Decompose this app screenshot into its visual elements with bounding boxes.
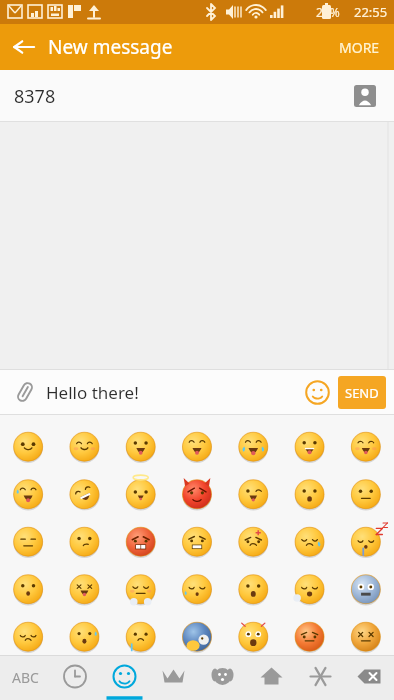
button[interactable]: Emoji 2	[57, 415, 114, 462]
button[interactable]: Emoji 34	[282, 603, 338, 650]
button[interactable]: Emoji 24	[114, 556, 170, 603]
button[interactable]: Emoji 22	[0, 556, 57, 603]
button[interactable]: Emoji 23	[57, 556, 114, 603]
button[interactable]: MORE	[325, 24, 394, 70]
button[interactable]: Emoji 4	[170, 415, 226, 462]
button[interactable]: Emoji 27	[282, 556, 338, 603]
button[interactable]: Emoji 14	[338, 462, 394, 509]
button[interactable]: Crown	[149, 655, 198, 700]
button[interactable]: Emoji 12	[226, 462, 282, 509]
button[interactable]: Emoji 18	[170, 509, 226, 556]
button[interactable]: Emoji 17	[114, 509, 170, 556]
button[interactable]: Emoji 32	[170, 603, 226, 650]
button[interactable]: Emoji 28	[338, 556, 394, 603]
button[interactable]: Emoji 20	[282, 509, 338, 556]
button[interactable]: ABC	[0, 655, 50, 700]
button[interactable]: Emoji 21	[338, 509, 394, 556]
button[interactable]: Emoji 8	[0, 462, 57, 509]
button[interactable]: Emoji 6	[282, 415, 338, 462]
button[interactable]: Emoji 1	[0, 415, 57, 462]
button[interactable]: Attach	[8, 375, 42, 409]
button[interactable]: Emoji 26	[226, 556, 282, 603]
staticText: ABC	[12, 668, 39, 687]
staticText: 21%	[316, 4, 340, 20]
button[interactable]: Emoji 31	[114, 603, 170, 650]
button[interactable]: Emoji 10	[114, 462, 170, 509]
button[interactable]: Symbols	[296, 655, 345, 700]
staticText: 8378	[14, 84, 56, 109]
button[interactable]: SEND	[338, 376, 386, 409]
button[interactable]: Emoji 11	[170, 462, 226, 509]
button[interactable]: Emoji 13	[282, 462, 338, 509]
button[interactable]: Emoji 35	[338, 603, 394, 650]
staticText: Hello there!	[46, 381, 139, 404]
staticText: SEND	[345, 384, 379, 402]
staticText: 22:55	[354, 3, 388, 21]
button[interactable]: Animals	[198, 655, 247, 700]
button[interactable]: Emoji 3	[114, 415, 170, 462]
button[interactable]: Emoji 29	[0, 603, 57, 650]
button[interactable]: Smileys	[100, 655, 149, 700]
button[interactable]: Emoji 19	[226, 509, 282, 556]
button[interactable]: Emoji 33	[226, 603, 282, 650]
staticText: MORE	[339, 38, 380, 57]
staticText: New message	[48, 34, 173, 60]
button[interactable]: Emoji	[300, 375, 334, 409]
button[interactable]: Emoji 16	[57, 509, 114, 556]
button[interactable]: Backspace	[345, 655, 394, 700]
button[interactable]: Recent	[50, 655, 100, 700]
button[interactable]: Home	[247, 655, 296, 700]
button[interactable]: Emoji 25	[170, 556, 226, 603]
button[interactable]: Back	[0, 24, 48, 70]
button[interactable]: Emoji 15	[0, 509, 57, 556]
button[interactable]: Emoji 7	[338, 415, 394, 462]
button[interactable]: Add recipient from contacts	[348, 79, 382, 113]
button[interactable]: Emoji 9	[57, 462, 114, 509]
button[interactable]: Emoji 5	[226, 415, 282, 462]
button[interactable]: Emoji 30	[57, 603, 114, 650]
